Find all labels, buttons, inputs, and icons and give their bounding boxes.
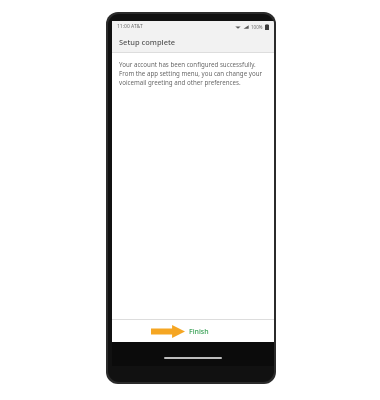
staticText: Finish: [189, 327, 209, 337]
other: Finish: [151, 325, 185, 338]
staticText: Setup complete: [119, 37, 176, 47]
button[interactable]: Finish: [148, 322, 212, 341]
other: Home: [164, 357, 222, 359]
staticText: Your account has been configured success…: [119, 60, 265, 87]
staticText: 11:00 AT&T: [117, 23, 143, 30]
staticText: 100%: [251, 24, 263, 30]
